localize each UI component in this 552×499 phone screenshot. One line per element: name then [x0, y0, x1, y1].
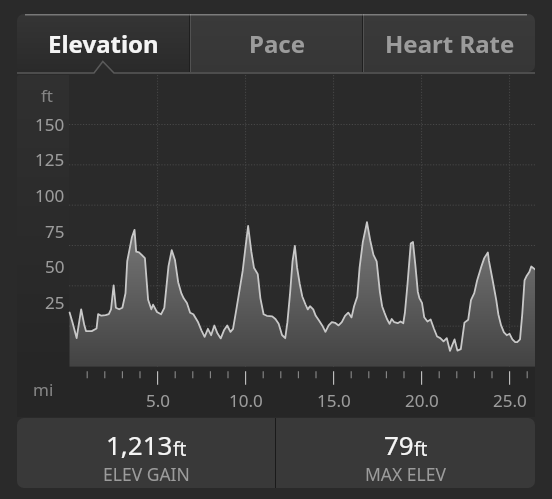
- staticText: ft: [414, 436, 428, 462]
- staticText: mi: [33, 378, 54, 401]
- staticText: 79: [384, 427, 414, 462]
- staticText: 100: [35, 184, 65, 207]
- staticText: 25: [45, 291, 65, 314]
- button[interactable]: Elevation: [17, 14, 189, 72]
- button[interactable]: 1,213: [17, 418, 275, 488]
- staticText: Heart Rate: [385, 27, 515, 60]
- staticText: 125: [35, 148, 65, 171]
- staticText: 10.0: [229, 389, 263, 412]
- staticText: ELEV GAIN: [103, 462, 190, 486]
- staticText: 20.0: [405, 389, 439, 412]
- staticText: 5.0: [146, 389, 171, 412]
- staticText: 150: [35, 113, 65, 136]
- staticText: ft: [41, 84, 53, 107]
- staticText: 1,213: [106, 427, 173, 462]
- staticText: Elevation: [48, 27, 159, 60]
- staticText: Pace: [249, 27, 305, 60]
- button[interactable]: 79: [276, 418, 535, 488]
- staticText: 25.0: [493, 389, 527, 412]
- staticText: 75: [45, 220, 65, 243]
- staticText: ft: [173, 436, 187, 462]
- button[interactable]: Heart Rate: [364, 14, 535, 72]
- staticText: MAX ELEV: [365, 462, 446, 486]
- staticText: 15.0: [317, 389, 351, 412]
- staticText: 50: [45, 255, 65, 278]
- button[interactable]: Pace: [191, 14, 362, 72]
